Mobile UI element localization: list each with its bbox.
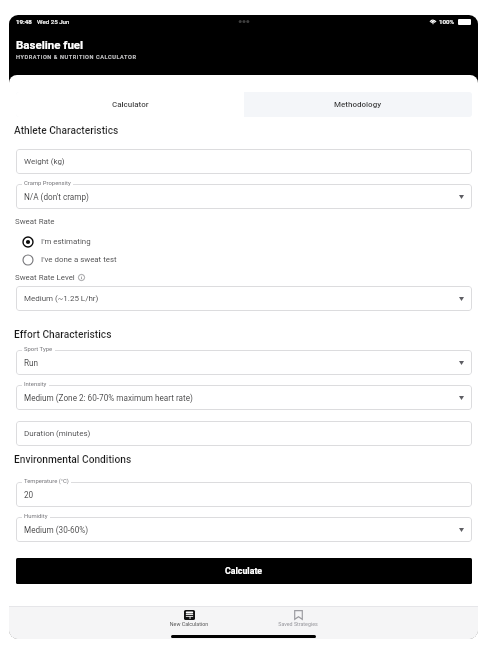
staticText: Saved Strategies: [265, 621, 331, 627]
staticText: Sport Type: [24, 346, 53, 353]
button[interactable]: Calculator: [16, 92, 244, 117]
staticText: Medium (Zone 2: 60-70% maximum heart rat…: [24, 393, 193, 403]
staticText: Temperature (°C): [24, 478, 69, 485]
staticText: I'm estimating: [41, 237, 91, 246]
staticText: N/A (don't cramp): [24, 192, 89, 202]
staticText: Intensity: [24, 381, 47, 388]
staticText: 20: [24, 490, 34, 500]
button[interactable]: N/A (don't cramp): [16, 184, 472, 209]
staticText: Sweat Rate: [15, 217, 55, 226]
button[interactable]: New Calculation: [156, 610, 222, 632]
button[interactable]: Saved Strategies: [265, 610, 331, 632]
button[interactable]: Duration (minutes): [16, 421, 472, 446]
button[interactable]: I'm estimating: [22, 234, 472, 249]
staticText: 100%: [439, 18, 455, 25]
button[interactable]: Medium (~1.25 L/hr): [16, 286, 472, 311]
staticText: Sweat Rate Level: [15, 273, 75, 282]
button[interactable]: Methodology: [244, 92, 472, 117]
staticText: Medium (~1.25 L/hr): [24, 294, 99, 303]
staticText: Wed 25 Jun: [37, 18, 70, 25]
staticText: Weight (kg): [24, 157, 65, 166]
staticText: I've done a sweat test: [41, 255, 117, 264]
staticText: HYDRATION & NUTRITION CALCULATOR: [16, 54, 137, 61]
staticText: Calculator: [112, 100, 149, 109]
staticText: Athlete Characteristics: [14, 125, 119, 137]
staticText: Baseline fuel: [16, 38, 84, 51]
staticText: Duration (minutes): [24, 429, 91, 438]
button[interactable]: I've done a sweat test: [22, 252, 472, 267]
staticText: Methodology: [334, 100, 382, 109]
staticText: Effort Characteristics: [14, 329, 112, 341]
button[interactable]: Run: [16, 350, 472, 375]
staticText: Environmental Conditions: [14, 454, 132, 466]
button[interactable]: Medium (Zone 2: 60-70% maximum heart rat…: [16, 385, 472, 410]
button[interactable]: 20: [16, 482, 472, 507]
staticText: New Calculation: [156, 621, 222, 627]
staticText: Run: [24, 358, 39, 368]
staticText: Humidity: [24, 513, 48, 520]
staticText: Cramp Propensity: [24, 180, 71, 187]
button[interactable]: Medium (30-60%): [16, 517, 472, 542]
button[interactable]: Calculate: [16, 558, 472, 584]
staticText: 19:48: [16, 18, 32, 25]
staticText: Medium (30-60%): [24, 525, 89, 535]
button[interactable]: Weight (kg): [16, 149, 472, 174]
staticText: Calculate: [225, 566, 263, 576]
